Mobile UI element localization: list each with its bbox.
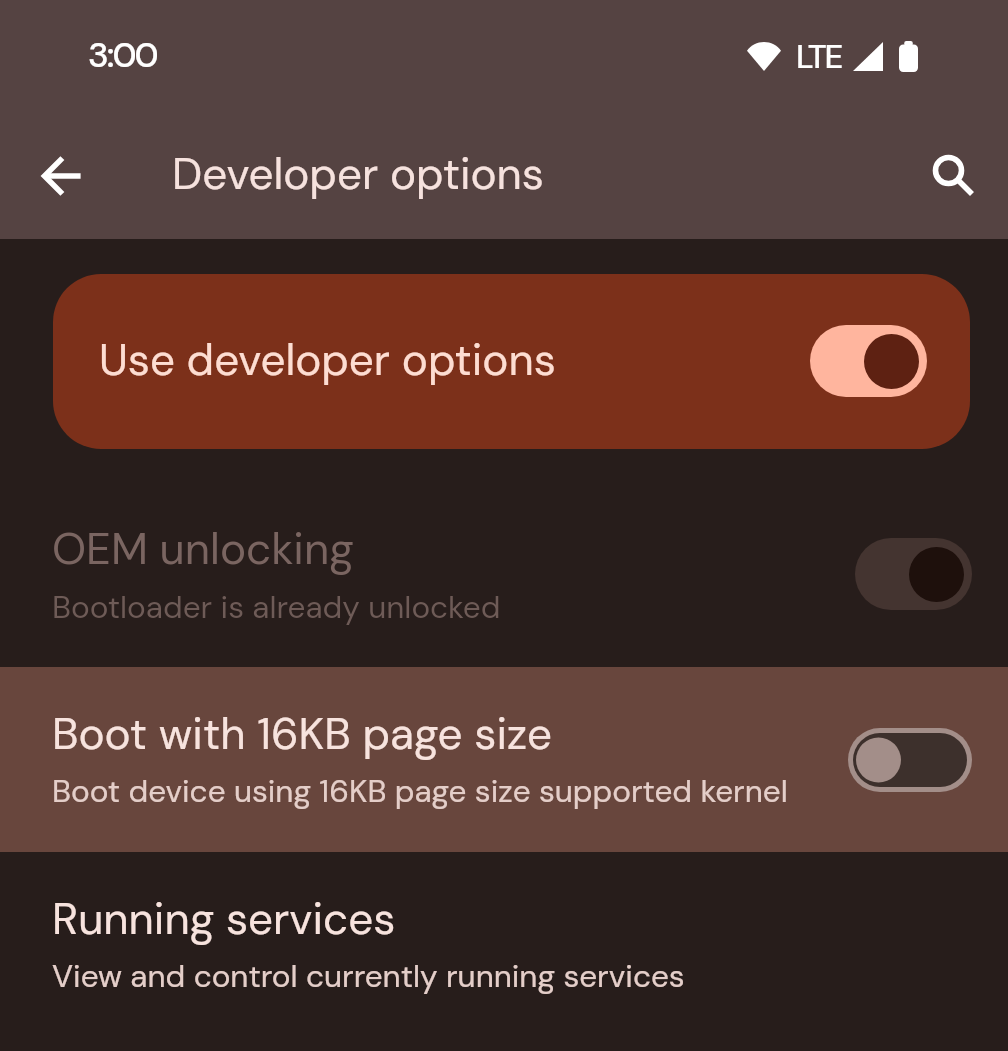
staticText: Boot with 16KB page size xyxy=(52,705,553,762)
button[interactable]: Use developer options xyxy=(53,274,970,449)
staticText: Boot device using 16KB page size support… xyxy=(52,771,788,812)
staticText: OEM unlocking xyxy=(52,520,354,577)
staticText: Running services xyxy=(52,890,396,947)
button[interactable]: Search xyxy=(905,127,1001,223)
staticText: Use developer options xyxy=(99,331,556,388)
staticText: View and control currently running servi… xyxy=(52,956,685,997)
button[interactable]: Toggle xyxy=(855,538,972,610)
button[interactable]: OEM unlocking xyxy=(0,449,1008,667)
button[interactable]: Running services xyxy=(0,852,1008,1051)
staticText: Bootloader is already unlocked xyxy=(52,587,501,628)
button[interactable]: Boot with 16KB page size xyxy=(0,667,1008,852)
staticText: 3:00 xyxy=(88,32,157,78)
button[interactable]: Toggle xyxy=(848,728,972,792)
staticText: Developer options xyxy=(172,145,544,202)
staticText: LTE xyxy=(796,35,842,78)
button[interactable]: Toggle xyxy=(810,325,927,397)
button[interactable]: Back xyxy=(14,128,110,224)
